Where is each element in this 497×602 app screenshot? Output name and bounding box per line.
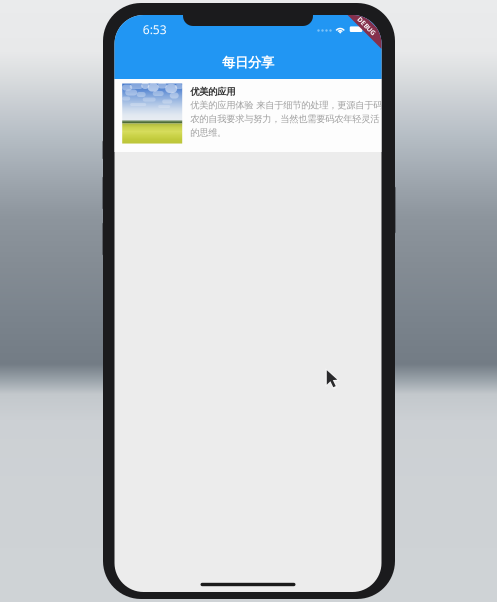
staticText: 优美的应用 — [190, 86, 235, 97]
button[interactable]: 优美的应用 — [114, 79, 381, 152]
staticText: 每日分享 — [222, 54, 274, 71]
staticText: DEBUG — [355, 22, 378, 31]
staticText: 6:53 — [143, 21, 167, 37]
staticText: 优美的应用体验 来自于细节的处理，更源自于码农的自我要求与努力，当然也需要码农年… — [190, 99, 382, 138]
